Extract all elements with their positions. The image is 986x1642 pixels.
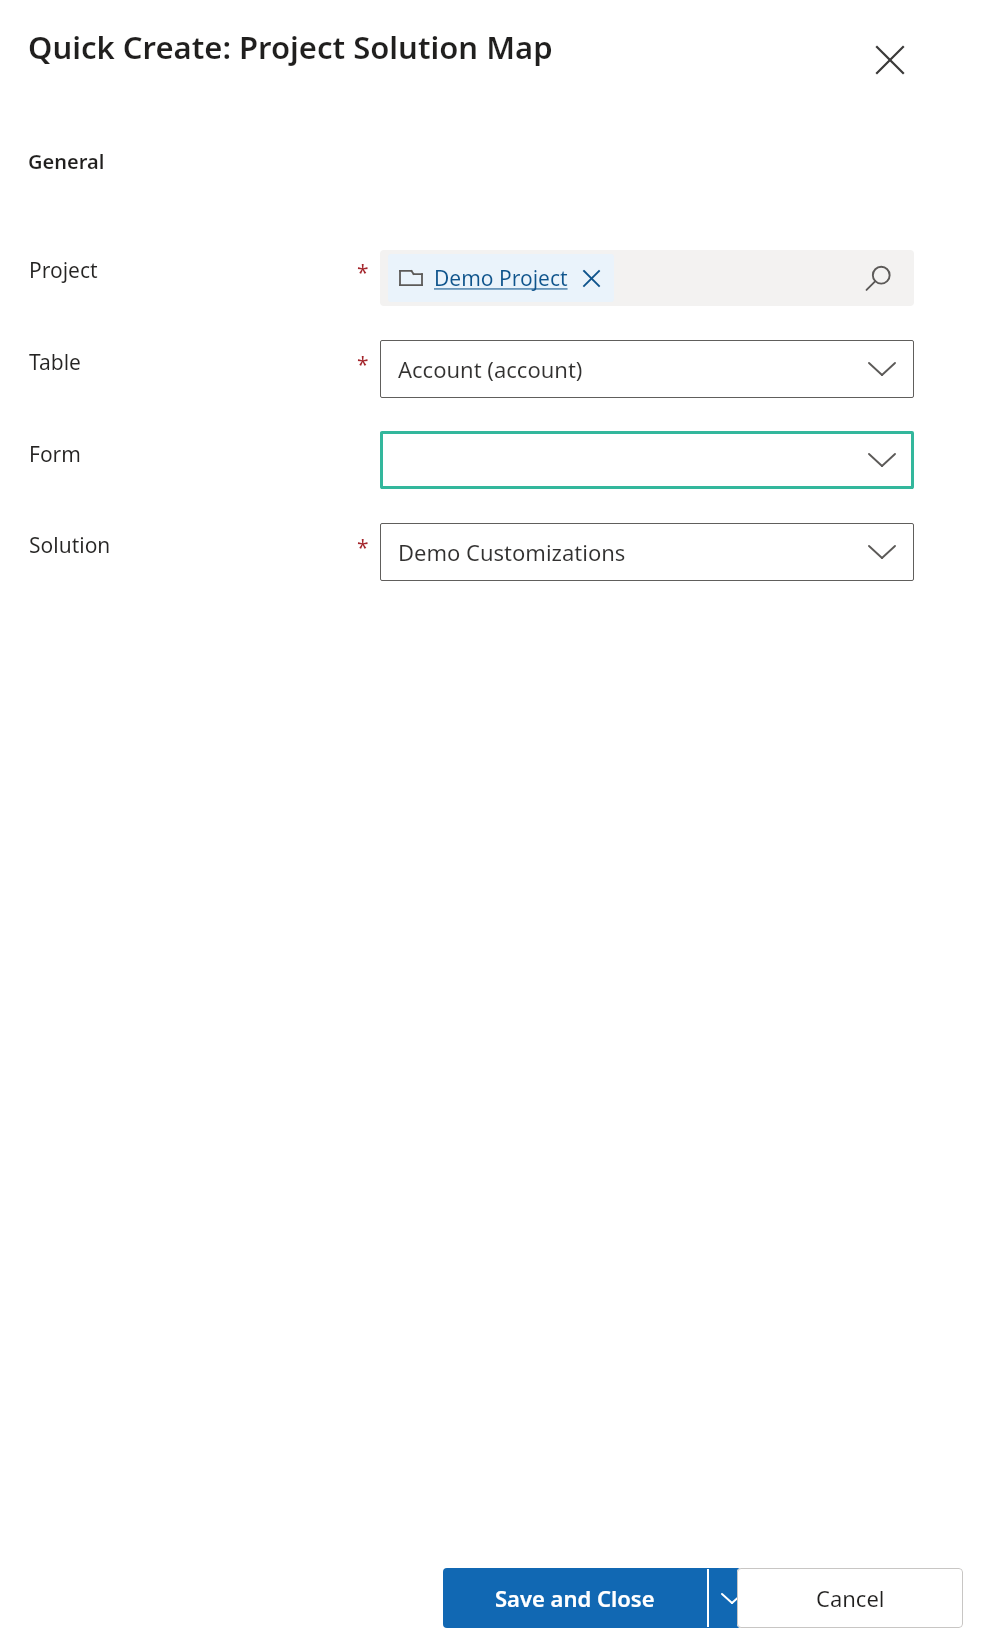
staticText: Quick Create: Project Solution Map (28, 26, 553, 68)
button[interactable]: Close (860, 30, 920, 90)
staticText: Demo Project (434, 264, 568, 293)
button[interactable]: Cancel (737, 1568, 963, 1628)
staticText: Cancel (816, 1583, 885, 1613)
staticText: * (357, 533, 369, 562)
other: Open dropdown (860, 530, 904, 574)
staticText: Demo Customizations (398, 537, 626, 567)
button[interactable]: Account (account) (380, 340, 914, 398)
button[interactable]: Open dropdown (380, 431, 914, 489)
staticText: Project (29, 256, 98, 285)
staticText: Save and Close (495, 1583, 655, 1613)
staticText: Form (29, 440, 81, 469)
other: Open dropdown (860, 347, 904, 391)
button[interactable]: More save options (709, 1568, 755, 1628)
staticText: * (357, 258, 369, 287)
staticText: General (28, 148, 105, 175)
other: Open dropdown (860, 438, 904, 482)
button[interactable]: Search records (858, 257, 900, 299)
button[interactable]: Remove Demo Project (580, 267, 602, 289)
staticText: Account (account) (398, 354, 583, 384)
button[interactable]: Demo Customizations (380, 523, 914, 581)
staticText: * (357, 350, 369, 379)
button[interactable]: Demo Project (380, 250, 914, 306)
staticText: Table (29, 348, 81, 377)
staticText: Solution (29, 531, 111, 560)
button[interactable]: Save and Close (443, 1568, 707, 1628)
